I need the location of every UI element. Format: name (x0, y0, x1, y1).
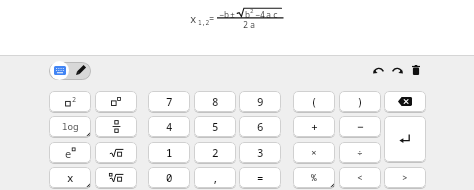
button[interactable]: 6 (239, 116, 281, 137)
button[interactable] (370, 62, 386, 78)
staticText: 2 (250, 7, 254, 15)
staticText: 1,2 (198, 18, 210, 26)
staticText: e (65, 147, 72, 158)
button[interactable]: − (339, 116, 381, 137)
button[interactable]: 2 (194, 142, 236, 163)
button[interactable]: 7 (148, 91, 190, 112)
button[interactable]: e (49, 142, 91, 163)
button[interactable]: ÷ (339, 142, 381, 163)
button[interactable]: 1 (148, 142, 190, 163)
staticText: 5 (212, 119, 219, 134)
staticText: 2 (212, 145, 219, 160)
staticText: c (273, 9, 279, 20)
button[interactable] (49, 62, 91, 80)
staticText: 2 (72, 95, 77, 104)
button[interactable] (95, 91, 137, 112)
staticText: − (255, 9, 261, 20)
button[interactable]: > (384, 167, 426, 188)
staticText: 0 (166, 170, 173, 185)
staticText: 3 (257, 145, 264, 160)
button[interactable] (409, 62, 423, 78)
staticText: > (402, 171, 408, 184)
button[interactable]: % (293, 167, 335, 188)
button[interactable]: 5 (194, 116, 236, 137)
button[interactable]: x (49, 167, 91, 188)
staticText: 9 (257, 94, 264, 109)
button[interactable] (384, 116, 426, 162)
button[interactable]: ( (293, 91, 335, 112)
staticText: × (311, 146, 317, 159)
button[interactable]: < (339, 167, 381, 188)
staticText: a (266, 9, 272, 20)
button[interactable]: , (194, 167, 236, 188)
staticText: 1 (166, 145, 173, 160)
staticText: − (357, 119, 364, 135)
button[interactable]: + (293, 116, 335, 137)
staticText: + (311, 119, 318, 135)
staticText: 7 (166, 94, 173, 109)
button[interactable]: log (49, 116, 91, 137)
button[interactable] (95, 142, 137, 163)
button[interactable] (95, 116, 137, 137)
button[interactable]: 0 (148, 167, 190, 188)
staticText: = (209, 13, 215, 25)
staticText: 2 (243, 19, 249, 30)
staticText: ± (230, 9, 236, 20)
button[interactable]: ) (339, 91, 381, 112)
button[interactable] (50, 61, 69, 80)
staticText: 6 (257, 119, 264, 134)
button[interactable]: 3 (239, 142, 281, 163)
staticText: log (62, 120, 79, 133)
button[interactable]: 2 (49, 91, 91, 112)
button[interactable] (389, 62, 405, 78)
button[interactable]: 4 (148, 116, 190, 137)
button[interactable]: = (239, 167, 281, 188)
button[interactable]: 8 (194, 91, 236, 112)
staticText: < (357, 171, 363, 184)
staticText: x (190, 12, 197, 27)
staticText: ( (311, 95, 317, 109)
staticText: 8 (212, 94, 219, 109)
staticText: , (212, 170, 219, 185)
staticText: ) (357, 95, 363, 109)
staticText: a (250, 19, 256, 30)
button[interactable]: 9 (239, 91, 281, 112)
staticText: 4 (260, 9, 266, 20)
staticText: ÷ (357, 146, 363, 159)
staticText: −b (219, 9, 230, 20)
button[interactable] (95, 167, 137, 188)
button[interactable] (384, 91, 426, 112)
staticText: % (311, 171, 317, 184)
staticText: = (257, 170, 264, 185)
button[interactable]: × (293, 142, 335, 163)
staticText: 4 (166, 119, 173, 134)
staticText: x (67, 170, 74, 185)
staticText: b (245, 9, 251, 20)
